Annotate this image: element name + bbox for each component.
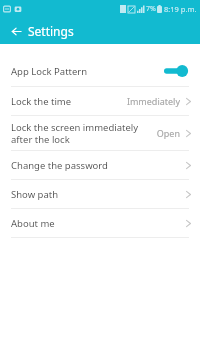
button[interactable]: Back xyxy=(6,21,26,41)
button[interactable]: App Lock Pattern xyxy=(0,56,200,86)
staticText: Lock the time xyxy=(11,95,122,108)
staticText: Settings xyxy=(28,23,74,39)
staticText: Open xyxy=(156,127,180,139)
button[interactable]: About me xyxy=(0,209,200,237)
staticText: Show path xyxy=(11,188,181,201)
staticText: 8:19 p.m. xyxy=(164,4,197,14)
button[interactable]: Show path xyxy=(0,180,200,208)
staticText: Lock the screen immediately after the lo… xyxy=(11,121,152,145)
staticText: About me xyxy=(11,217,181,230)
button[interactable]: Lock the time xyxy=(0,87,200,115)
staticText: App Lock Pattern xyxy=(11,65,164,78)
staticText: Change the password xyxy=(11,159,181,172)
staticText: Immediately xyxy=(126,95,180,107)
button[interactable]: Lock the screen immediately after the lo… xyxy=(0,116,200,150)
staticText: 7% xyxy=(146,4,156,14)
button[interactable]: Change the password xyxy=(0,151,200,179)
